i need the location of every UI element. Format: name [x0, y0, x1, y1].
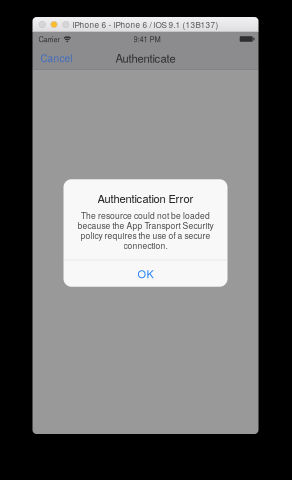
- staticText: because the App Transport Security: [77, 219, 213, 231]
- staticText: 9:41 PM: [133, 34, 160, 44]
- staticText: Authenticate: [115, 50, 175, 66]
- staticText: Authentication Error: [97, 190, 193, 206]
- staticText: iPhone 6 - iPhone 6 / iOS 9.1 (13B137): [72, 19, 218, 30]
- button[interactable]: Minimize: [51, 21, 57, 28]
- staticText: OK: [137, 266, 153, 281]
- button[interactable]: Close: [39, 21, 45, 28]
- staticText: The resource could not be loaded: [81, 209, 210, 221]
- button[interactable]: OK: [63, 260, 227, 287]
- button[interactable]: Cancel: [32, 46, 80, 70]
- staticText: Cancel: [40, 51, 72, 65]
- button[interactable]: Zoom: [63, 21, 69, 28]
- staticText: Carrier: [38, 34, 59, 44]
- staticText: policy requires the use of a secure: [80, 229, 210, 241]
- staticText: connection.: [123, 239, 167, 251]
